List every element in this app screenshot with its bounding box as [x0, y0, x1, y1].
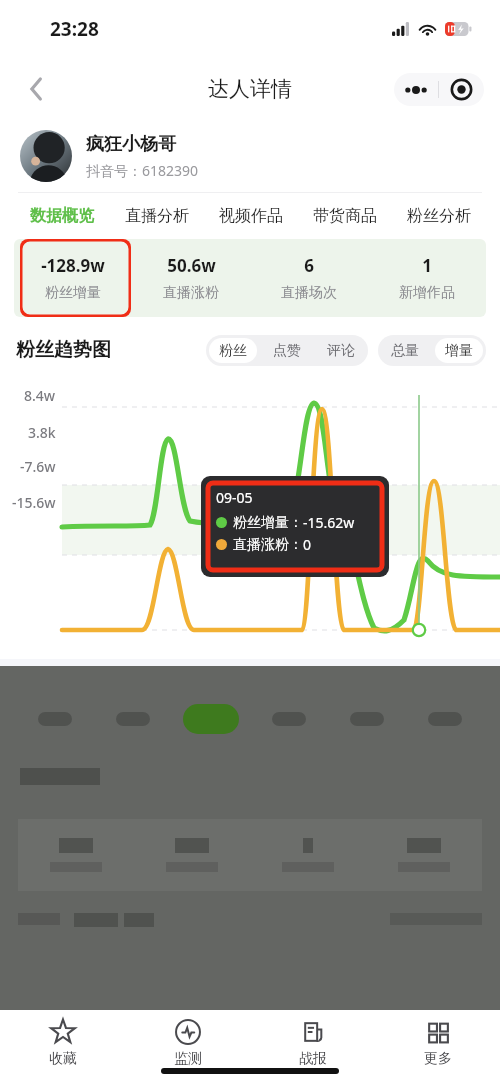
- staticText: 09-05: [216, 488, 253, 507]
- staticText: 疯狂小杨哥: [86, 133, 176, 156]
- staticText: 新增作品: [399, 284, 455, 302]
- staticText: 粉丝增量: [45, 284, 101, 302]
- staticText: 数据概览: [30, 206, 94, 226]
- staticText: 直播分析: [125, 206, 189, 226]
- staticText: 更多: [424, 1050, 452, 1068]
- staticText: 评论: [327, 342, 355, 359]
- staticText: 23:28: [50, 16, 99, 42]
- staticText: 6: [304, 254, 314, 277]
- button[interactable]: 1: [368, 239, 486, 317]
- button[interactable]: 更多: [375, 1010, 500, 1082]
- button[interactable]: 直播分析: [109, 193, 204, 239]
- button[interactable]: 监测: [125, 1010, 250, 1082]
- staticText: 视频作品: [219, 206, 283, 226]
- staticText: 粉丝: [219, 342, 247, 359]
- button[interactable]: 评论: [317, 338, 365, 363]
- staticText: 50.6w: [167, 254, 216, 277]
- staticText: -128.9w: [41, 254, 105, 277]
- staticText: 监测: [174, 1050, 202, 1068]
- staticText: 粉丝增量：: [233, 514, 303, 532]
- staticText: 直播涨粉: [163, 284, 219, 302]
- staticText: 0: [303, 535, 312, 554]
- button[interactable]: Back: [14, 67, 58, 111]
- staticText: 增量: [445, 342, 473, 359]
- staticText: 点赞: [273, 342, 301, 359]
- button[interactable]: 粉丝分析: [392, 193, 486, 239]
- button[interactable]: 总量: [381, 338, 429, 363]
- button[interactable]: 粉丝: [209, 338, 257, 363]
- button[interactable]: 数据概览: [14, 193, 109, 239]
- button[interactable]: More options: [394, 73, 438, 106]
- button[interactable]: Record: [439, 73, 484, 106]
- staticText: 直播涨粉：: [233, 536, 303, 554]
- staticText: 粉丝趋势图: [16, 338, 111, 362]
- staticText: 抖音号：6182390: [86, 161, 199, 180]
- staticText: 带货商品: [313, 206, 377, 226]
- staticText: 战报: [299, 1050, 327, 1068]
- staticText: -7.6w: [20, 457, 56, 476]
- button[interactable]: 视频作品: [204, 193, 298, 239]
- button[interactable]: 战报: [250, 1010, 375, 1082]
- staticText: -15.6w: [12, 493, 56, 512]
- button[interactable]: -128.9w: [14, 239, 132, 317]
- staticText: 1: [422, 254, 432, 277]
- button[interactable]: 增量: [435, 338, 483, 363]
- button[interactable]: 6: [250, 239, 368, 317]
- staticText: 8.4w: [24, 386, 56, 405]
- button[interactable]: 50.6w: [132, 239, 250, 317]
- staticText: -15.62w: [303, 513, 355, 532]
- staticText: 粉丝分析: [407, 206, 471, 226]
- button[interactable]: 带货商品: [298, 193, 392, 239]
- staticText: 达人详情: [208, 76, 292, 102]
- staticText: 直播场次: [281, 284, 337, 302]
- button[interactable]: 点赞: [263, 338, 311, 363]
- staticText: 收藏: [49, 1050, 77, 1068]
- staticText: 总量: [391, 342, 419, 359]
- button[interactable]: 收藏: [0, 1010, 125, 1082]
- button[interactable]: 疯狂小杨哥: [0, 120, 500, 192]
- staticText: 3.8k: [28, 423, 56, 442]
